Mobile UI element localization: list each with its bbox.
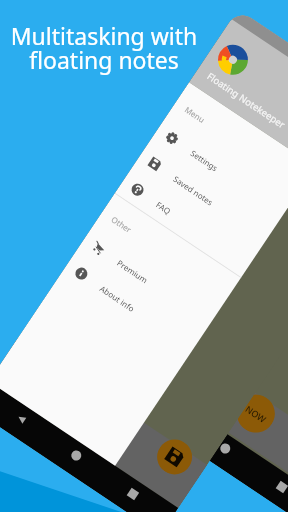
button[interactable]: Note now bbox=[229, 387, 282, 440]
staticText: Other bbox=[109, 213, 134, 235]
button[interactable]: About info bbox=[60, 253, 201, 359]
staticText: FAQ bbox=[154, 199, 173, 217]
staticText: Saved notes bbox=[171, 173, 216, 208]
button[interactable]: Saved notes bbox=[133, 144, 274, 250]
button[interactable]: Recent apps bbox=[265, 470, 288, 503]
staticText: Multitasking with floating notes bbox=[9, 20, 199, 76]
button[interactable]: Settings bbox=[151, 118, 288, 224]
staticText: Premium bbox=[115, 257, 150, 286]
button[interactable]: Back bbox=[5, 402, 38, 435]
button[interactable]: FAQ bbox=[116, 169, 257, 276]
button[interactable]: Recent apps bbox=[116, 477, 149, 510]
staticText: Menu bbox=[183, 104, 207, 125]
button[interactable]: Home bbox=[60, 439, 93, 472]
button[interactable]: Premium bbox=[77, 227, 218, 334]
button[interactable]: New note bbox=[150, 433, 199, 481]
staticText: About info bbox=[98, 283, 137, 314]
button[interactable]: Back bbox=[154, 395, 187, 428]
staticText: Floating Notekeeper bbox=[205, 70, 288, 132]
staticText: NOW bbox=[243, 402, 269, 425]
button[interactable]: Home bbox=[209, 432, 242, 465]
staticText: Settings bbox=[189, 147, 220, 174]
